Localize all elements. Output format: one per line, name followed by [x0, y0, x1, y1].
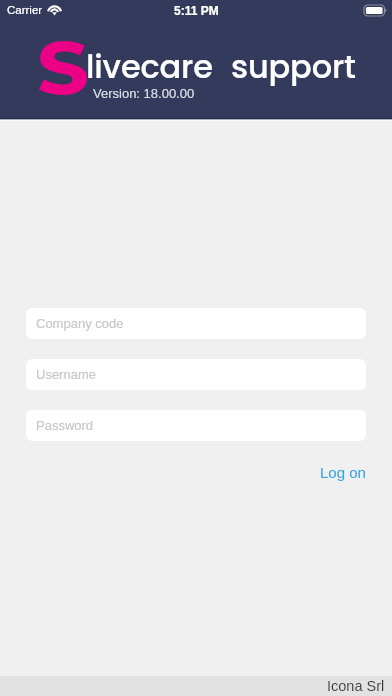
button[interactable]: Password: [26, 410, 366, 441]
staticText: Username: [36, 367, 96, 382]
other: Wi-Fi: [47, 2, 62, 14]
staticText: Company code: [36, 316, 124, 331]
staticText: Carrier: [7, 4, 43, 17]
button[interactable]: Company code: [26, 308, 366, 339]
staticText: livecare: [86, 44, 213, 89]
staticText: Log on: [320, 464, 366, 481]
other: Battery: [364, 5, 387, 16]
staticText: support: [231, 44, 356, 89]
staticText: Icona Srl: [327, 678, 385, 694]
button[interactable]: Log on: [314, 462, 366, 485]
staticText: Version: 18.00.00: [93, 86, 195, 101]
staticText: Password: [36, 418, 94, 433]
button[interactable]: Username: [26, 359, 366, 390]
staticText: 5:11 PM: [174, 4, 219, 17]
